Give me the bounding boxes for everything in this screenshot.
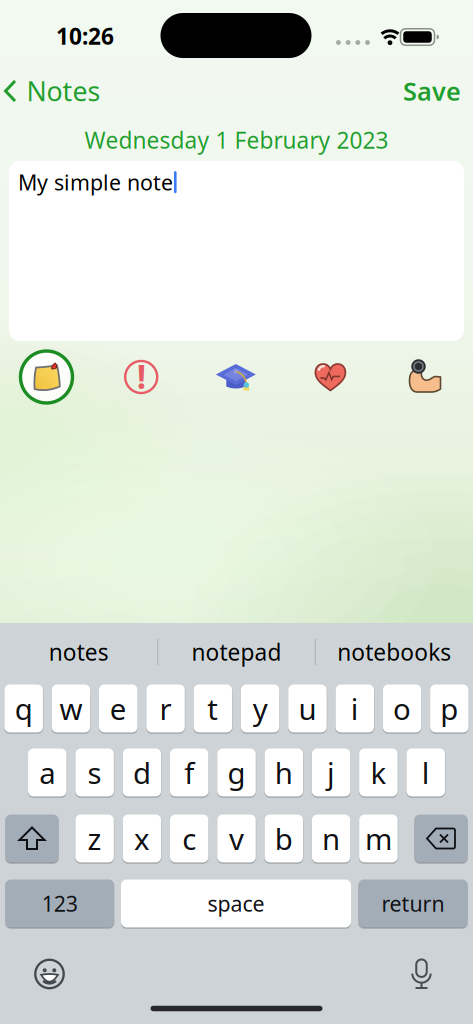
- staticText: q: [15, 689, 33, 728]
- staticText: j: [327, 753, 335, 792]
- button[interactable]: Note category: [17, 348, 75, 406]
- button[interactable]: b: [265, 814, 303, 863]
- staticText: return: [381, 889, 444, 918]
- staticText: g: [227, 753, 245, 792]
- button[interactable]: notes: [1, 629, 157, 675]
- staticText: t: [207, 689, 218, 728]
- staticText: i: [351, 689, 359, 728]
- button[interactable]: Health category: [306, 353, 354, 401]
- staticText: o: [393, 689, 411, 728]
- button[interactable]: j: [312, 748, 350, 797]
- staticText: 10:26: [56, 21, 114, 51]
- staticText: l: [422, 753, 430, 792]
- staticText: notes: [49, 637, 109, 667]
- button[interactable]: Shift: [5, 814, 58, 863]
- staticText: space: [207, 889, 264, 918]
- button[interactable]: space: [121, 879, 351, 928]
- button[interactable]: y: [241, 684, 279, 733]
- button[interactable]: i: [335, 684, 374, 733]
- staticText: m: [365, 819, 392, 858]
- staticText: w: [59, 689, 82, 728]
- button[interactable]: r: [146, 684, 185, 733]
- staticText: notebooks: [337, 637, 451, 667]
- staticText: f: [184, 753, 194, 792]
- staticText: a: [39, 753, 55, 792]
- button[interactable]: u: [288, 684, 327, 733]
- staticText: s: [88, 753, 102, 792]
- button[interactable]: x: [123, 814, 161, 863]
- button[interactable]: t: [194, 684, 232, 733]
- staticText: notepad: [191, 637, 281, 667]
- button[interactable]: p: [430, 684, 469, 733]
- button[interactable]: c: [170, 814, 208, 863]
- button[interactable]: z: [75, 814, 114, 863]
- button[interactable]: q: [4, 684, 43, 733]
- button[interactable]: g: [217, 748, 256, 797]
- button[interactable]: o: [383, 684, 421, 733]
- staticText: n: [322, 819, 340, 858]
- staticText: d: [133, 753, 151, 792]
- staticText: y: [253, 689, 268, 728]
- button[interactable]: Study category: [212, 353, 260, 401]
- button[interactable]: n: [312, 814, 350, 863]
- button[interactable]: m: [359, 814, 398, 863]
- button[interactable]: k: [359, 748, 398, 797]
- staticText: 123: [42, 889, 78, 918]
- staticText: p: [440, 689, 458, 728]
- button[interactable]: Important category: [117, 353, 165, 401]
- button[interactable]: l: [406, 748, 445, 797]
- button[interactable]: f: [170, 748, 208, 797]
- staticText: r: [159, 689, 171, 728]
- button[interactable]: a: [28, 748, 67, 797]
- staticText: Save: [403, 74, 461, 108]
- button[interactable]: Emoji: [27, 952, 71, 996]
- staticText: My simple note: [18, 168, 173, 196]
- button[interactable]: w: [52, 684, 90, 733]
- button[interactable]: Dictation: [399, 952, 443, 996]
- button[interactable]: Delete: [414, 814, 467, 863]
- staticText: b: [275, 819, 293, 858]
- staticText: e: [110, 689, 127, 728]
- staticText: c: [182, 819, 196, 858]
- staticText: Notes: [26, 73, 100, 109]
- button[interactable]: notepad: [158, 629, 314, 675]
- button[interactable]: h: [265, 748, 303, 797]
- button[interactable]: notebooks: [316, 629, 472, 675]
- button[interactable]: 123: [5, 879, 114, 928]
- button[interactable]: d: [123, 748, 161, 797]
- staticText: v: [229, 819, 244, 858]
- button[interactable]: e: [99, 684, 137, 733]
- button[interactable]: Workout category: [401, 353, 449, 401]
- button[interactable]: v: [217, 814, 256, 863]
- staticText: Wednesday 1 February 2023: [84, 125, 388, 155]
- staticText: x: [134, 819, 150, 858]
- staticText: !: [137, 354, 146, 398]
- button[interactable]: s: [75, 748, 114, 797]
- staticText: z: [88, 819, 102, 858]
- staticText: k: [370, 753, 386, 792]
- button[interactable]: return: [358, 879, 467, 928]
- staticText: h: [275, 753, 293, 792]
- button[interactable]: Save: [403, 69, 461, 113]
- button[interactable]: Back: [3, 69, 100, 113]
- staticText: u: [298, 689, 316, 728]
